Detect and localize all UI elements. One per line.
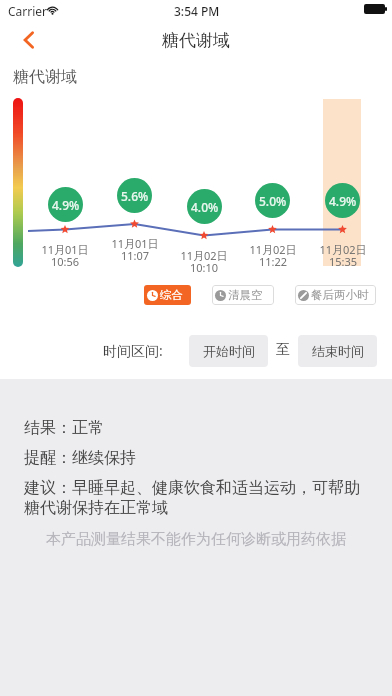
- staticText: 至: [276, 341, 290, 359]
- staticText: 3:54 PM: [174, 3, 220, 19]
- staticText: 5.0%: [259, 193, 287, 209]
- staticText: 开始时间: [203, 343, 255, 359]
- staticText: 建议：早睡早起、健康饮食和适当运动，可帮助 糖代谢保持在正常域: [24, 478, 360, 518]
- staticText: 结果：正常: [24, 418, 104, 438]
- staticText: Carrier: [8, 3, 48, 19]
- button[interactable]: 综合: [144, 285, 191, 305]
- button[interactable]: 餐后两小时: [295, 285, 376, 305]
- staticText: 时间区间:: [103, 341, 163, 360]
- staticText: 11月02日 10:10: [166, 248, 242, 276]
- button[interactable]: 开始时间: [189, 335, 268, 367]
- staticText: 11月02日 15:35: [305, 242, 381, 270]
- staticText: 提醒：继续保持: [24, 448, 136, 468]
- staticText: 餐后两小时: [311, 288, 369, 302]
- staticText: 本产品测量结果不能作为任何诊断或用药依据: [46, 530, 346, 549]
- staticText: 综合: [160, 288, 183, 302]
- staticText: 4.9%: [329, 193, 357, 209]
- button[interactable]: 结束时间: [298, 335, 377, 367]
- staticText: 4.9%: [52, 197, 80, 213]
- staticText: 5.6%: [121, 188, 149, 204]
- staticText: 4.0%: [191, 199, 219, 215]
- staticText: 11月01日 11:07: [97, 236, 173, 264]
- button[interactable]: Back: [14, 25, 44, 55]
- staticText: 11月02日 11:22: [235, 242, 311, 270]
- staticText: 结束时间: [312, 343, 364, 359]
- staticText: 糖代谢域: [162, 30, 230, 51]
- staticText: 糖代谢域: [13, 67, 77, 87]
- button[interactable]: 清晨空腹: [212, 285, 274, 305]
- staticText: 11月01日 10:56: [27, 242, 103, 270]
- staticText: 清晨空腹: [228, 288, 271, 302]
